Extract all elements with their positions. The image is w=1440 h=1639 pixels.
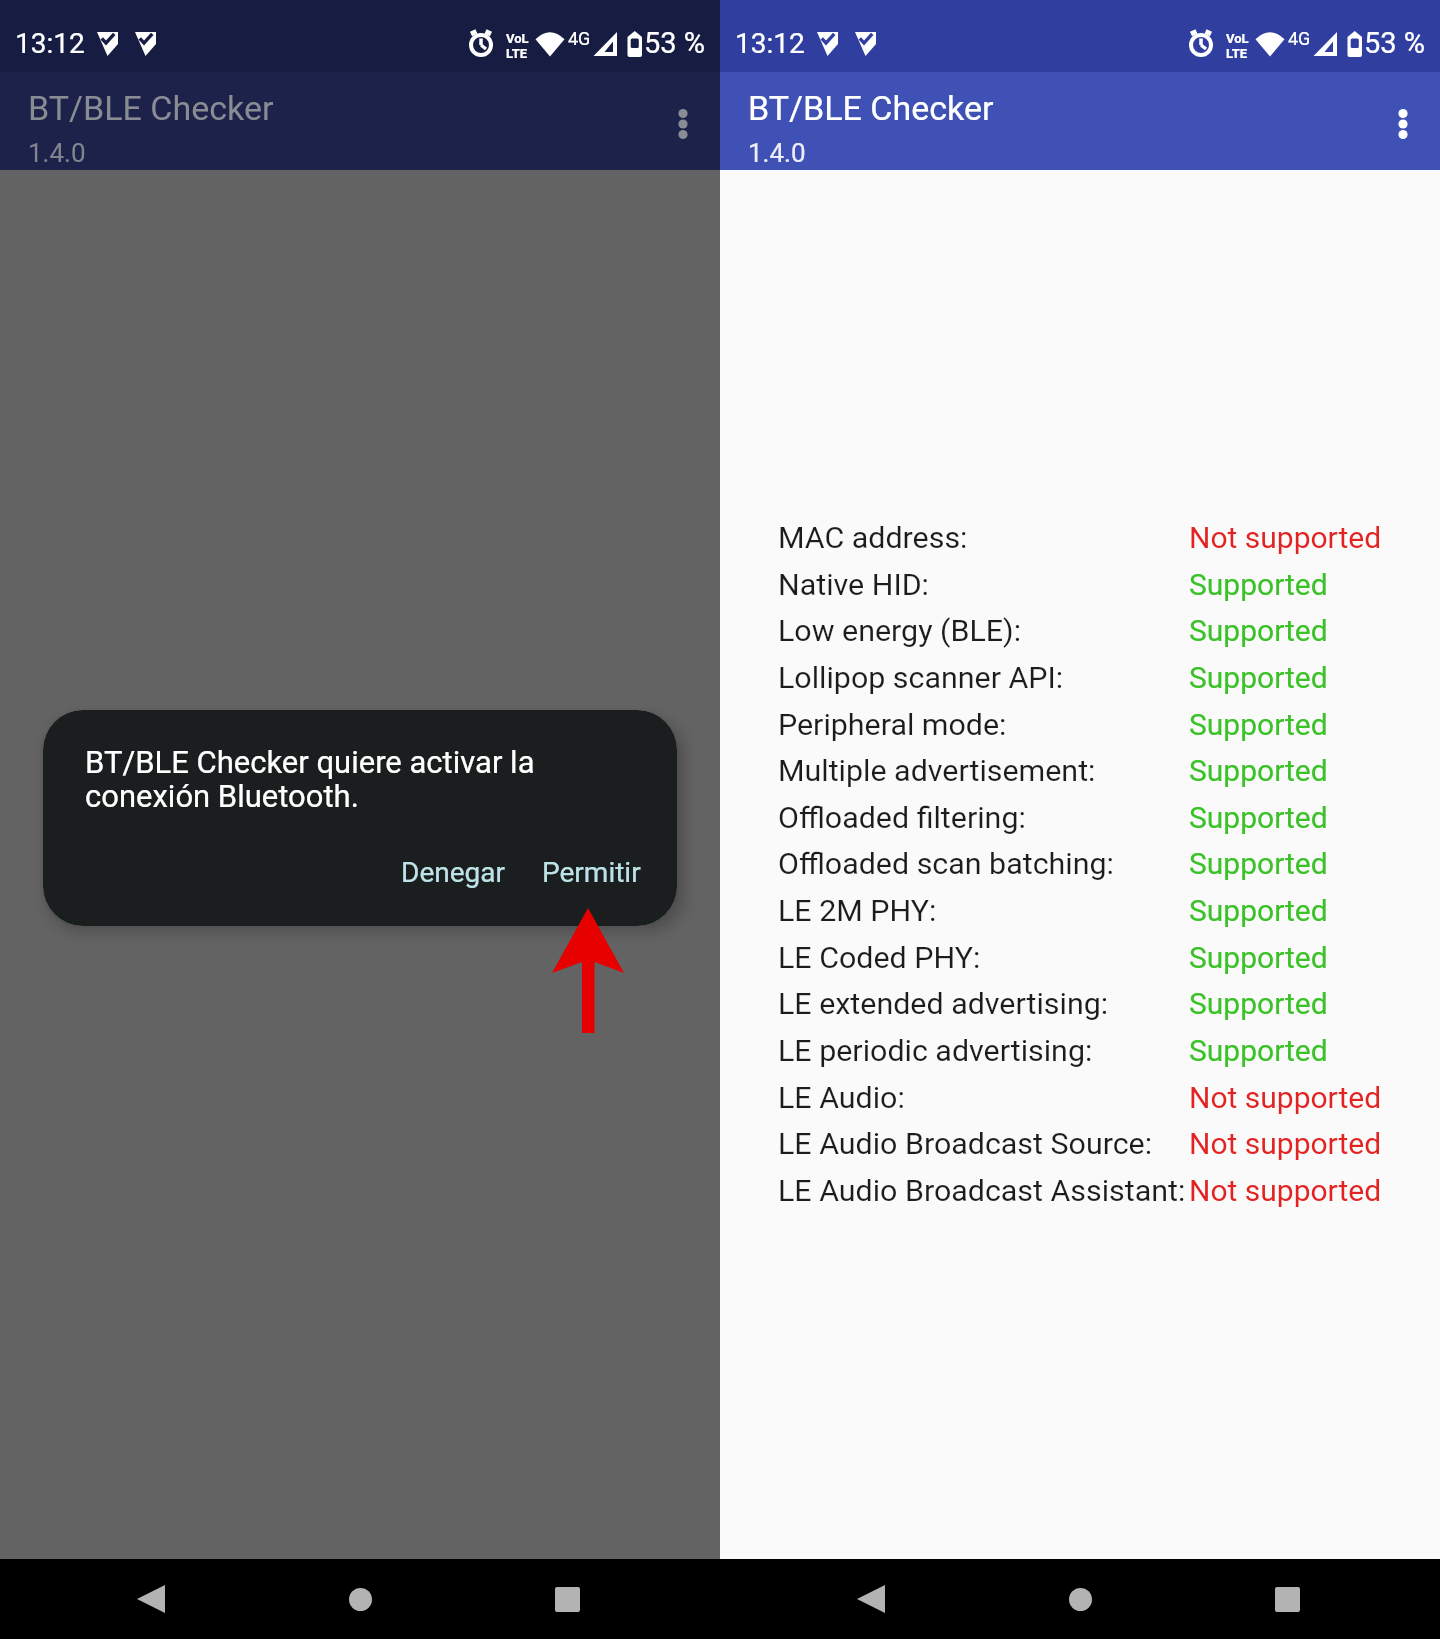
staticText: LE Audio Broadcast Assistant: [778, 1173, 1186, 1209]
button[interactable]: Home [1040, 1559, 1120, 1639]
staticText: Native HID: [778, 567, 929, 603]
staticText: Supported [1189, 986, 1328, 1021]
staticText: 53 % [1364, 26, 1426, 60]
staticText: 13:12 [15, 27, 85, 60]
staticText: 53 % [644, 26, 706, 60]
staticText: Supported [1189, 753, 1328, 788]
staticText: LE periodic advertising: [778, 1033, 1093, 1069]
staticText: LTE [506, 46, 528, 61]
staticText: Supported [1189, 1033, 1328, 1068]
staticText: Offloaded scan batching: [778, 846, 1114, 882]
staticText: Permitir [542, 856, 641, 889]
staticText: BT/BLE Checker [748, 88, 994, 128]
staticText: Supported [1189, 707, 1328, 742]
staticText: VoL [1226, 31, 1249, 46]
staticText: Supported [1189, 660, 1328, 695]
button[interactable]: Permitir [526, 842, 657, 903]
staticText: 1.4.0 [28, 138, 86, 168]
staticText: Offloaded filtering: [778, 800, 1026, 836]
button[interactable]: Recents [527, 1559, 607, 1639]
button[interactable]: More options [641, 82, 725, 166]
staticText: Not supported [1189, 520, 1382, 555]
staticText: LE 2M PHY: [778, 893, 937, 929]
staticText: MAC address: [778, 520, 968, 556]
button[interactable]: Back [831, 1559, 911, 1639]
staticText: Low energy (BLE): [778, 613, 1022, 649]
staticText: Supported [1189, 846, 1328, 881]
staticText: BT/BLE Checker [28, 88, 274, 128]
staticText: Supported [1189, 567, 1328, 602]
staticText: Not supported [1189, 1126, 1382, 1161]
staticText: LTE [1226, 46, 1248, 61]
staticText: 4G [568, 28, 591, 49]
staticText: Lollipop scanner API: [778, 660, 1064, 696]
staticText: BT/BLE Checker quiere activar la conexió… [85, 744, 535, 814]
staticText: Supported [1189, 613, 1328, 648]
staticText: 1.4.0 [748, 138, 806, 168]
staticText: Supported [1189, 940, 1328, 975]
staticText: LE Coded PHY: [778, 940, 981, 976]
staticText: Supported [1189, 893, 1328, 928]
staticText: Denegar [401, 856, 505, 889]
staticText: LE Audio Broadcast Source: [778, 1126, 1153, 1162]
staticText: Peripheral mode: [778, 707, 1007, 743]
staticText: LE Audio: [778, 1080, 905, 1116]
staticText: Not supported [1189, 1173, 1382, 1208]
button[interactable]: Back [111, 1559, 191, 1639]
staticText: LE extended advertising: [778, 986, 1109, 1022]
staticText: Not supported [1189, 1080, 1382, 1115]
button[interactable]: Denegar [385, 842, 521, 903]
button[interactable]: More options [1361, 82, 1440, 166]
staticText: VoL [506, 31, 529, 46]
button[interactable]: Home [320, 1559, 400, 1639]
staticText: Multiple advertisement: [778, 753, 1096, 789]
staticText: Supported [1189, 800, 1328, 835]
button[interactable]: Recents [1247, 1559, 1327, 1639]
staticText: 4G [1288, 28, 1311, 49]
staticText: 13:12 [735, 27, 805, 60]
